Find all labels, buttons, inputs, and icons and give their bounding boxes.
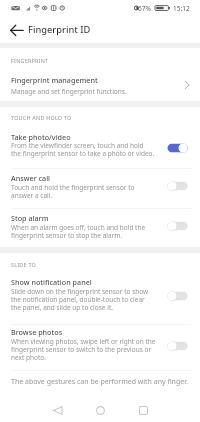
staticText: Fingerprint ID bbox=[28, 23, 91, 36]
staticText: Slide down on the fingerprint sensor to … bbox=[11, 287, 149, 312]
button[interactable]: Back bbox=[5, 20, 29, 41]
button[interactable]: Home bbox=[88, 398, 112, 422]
staticText: From the viewfinder screen, touch and ho… bbox=[11, 141, 155, 158]
staticText: 67% bbox=[138, 4, 152, 13]
button[interactable] bbox=[0, 169, 200, 206]
staticText: Browse photos bbox=[11, 327, 63, 337]
button[interactable]: Browse photos toggle bbox=[165, 339, 190, 353]
button[interactable]: Stop alarm toggle bbox=[165, 219, 190, 233]
button[interactable] bbox=[0, 210, 200, 247]
button[interactable]: Answer call toggle bbox=[165, 179, 190, 193]
staticText: SLIDE TO bbox=[11, 261, 37, 268]
staticText: FINGERPRINT bbox=[11, 57, 49, 64]
staticText: Stop alarm bbox=[11, 213, 49, 223]
button[interactable] bbox=[0, 326, 200, 370]
staticText: Fingerprint management bbox=[11, 75, 98, 85]
button[interactable]: Show notification panel toggle bbox=[165, 289, 190, 303]
button[interactable] bbox=[0, 275, 200, 320]
staticText: Answer call bbox=[11, 173, 51, 183]
button[interactable]: Take photo or video toggle bbox=[165, 141, 190, 155]
button[interactable]: Recent apps bbox=[131, 398, 155, 422]
other: Open fingerprint management bbox=[182, 79, 194, 91]
staticText: When an alarm goes off, touch and hold t… bbox=[11, 223, 146, 240]
button[interactable] bbox=[0, 129, 200, 166]
staticText: Touch and hold the fingerprint sensor to… bbox=[11, 183, 135, 200]
button[interactable]: Back bbox=[45, 398, 69, 422]
staticText: The above gestures can be performed with… bbox=[11, 377, 188, 387]
staticText: Take photo/video bbox=[11, 132, 71, 142]
staticText: 15:12 bbox=[173, 4, 190, 13]
staticText: When viewing photos, swipe left or right… bbox=[11, 337, 156, 362]
staticText: Show notification panel bbox=[11, 277, 92, 287]
staticText: TOUCH AND HOLD TO bbox=[11, 114, 72, 121]
button[interactable]: Fingerprint management bbox=[0, 72, 200, 97]
staticText: Manage and set fingerprint functions. bbox=[11, 87, 127, 96]
